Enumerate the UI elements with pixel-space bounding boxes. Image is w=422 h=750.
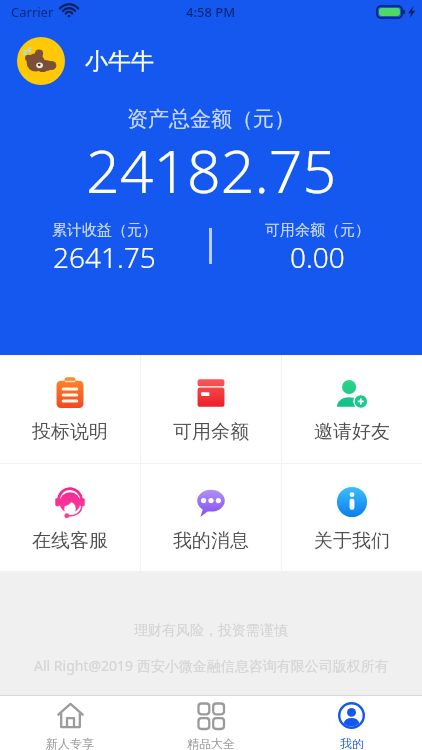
staticText: All Right@2019 西安小微金融信息咨询有限公司版权所有 — [34, 656, 389, 675]
button[interactable]: 精品大全 — [140, 696, 281, 750]
button[interactable]: 我的消息 — [141, 464, 281, 571]
button[interactable]: 可用余额 — [141, 355, 281, 463]
staticText: 在线客服 — [32, 529, 108, 553]
staticText: 理财有风险，投资需谨慎 — [134, 622, 288, 640]
staticText: 累计收益（元） — [52, 221, 157, 240]
button[interactable]: 在线客服 — [0, 464, 140, 571]
staticText: 投标说明 — [32, 420, 108, 444]
staticText: 2641.75 — [53, 238, 156, 276]
button[interactable]: 新人专享 — [0, 696, 140, 750]
staticText: 资产总金额（元） — [127, 106, 295, 132]
staticText: 关于我们 — [314, 529, 390, 553]
staticText: 我的消息 — [173, 529, 249, 553]
staticText: 邀请好友 — [314, 420, 390, 444]
staticText: 0.00 — [290, 238, 345, 276]
staticText: 新人专享 — [46, 736, 94, 750]
staticText: 4:58 PM — [186, 3, 236, 21]
button[interactable]: 我的 — [281, 696, 422, 750]
other: 我的 — [338, 702, 365, 729]
staticText: Carrier — [11, 3, 54, 21]
button[interactable]: 关于我们 — [282, 464, 422, 571]
other: 头像 — [17, 37, 65, 85]
staticText: 24182.75 — [86, 130, 337, 210]
button[interactable]: 邀请好友 — [282, 355, 422, 463]
staticText: 我的 — [340, 736, 364, 750]
staticText: 可用余额 — [173, 420, 249, 444]
other: 精品大全 — [197, 702, 224, 729]
staticText: 精品大全 — [187, 736, 235, 750]
other: 新人专享 — [57, 702, 84, 729]
staticText: 可用余额（元） — [265, 221, 370, 240]
staticText: 小牛牛 — [85, 47, 154, 76]
button[interactable]: 投标说明 — [0, 355, 140, 463]
